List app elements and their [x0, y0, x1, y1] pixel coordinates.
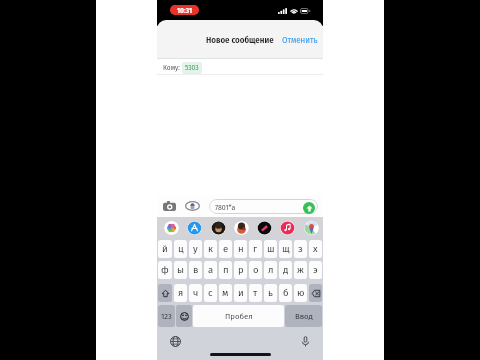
button[interactable]: с [204, 284, 217, 302]
button[interactable]: Отменить [275, 28, 323, 53]
staticText: р [238, 264, 244, 275]
staticText: щ [282, 243, 290, 254]
staticText: ы [177, 264, 184, 275]
staticText: м [222, 287, 229, 298]
staticText: Кому: [163, 64, 180, 72]
button[interactable]: App 7 [304, 221, 319, 235]
button[interactable]: ц [174, 240, 187, 258]
button[interactable]: е [219, 240, 232, 258]
staticText: д [283, 264, 289, 275]
staticText: т [253, 287, 258, 298]
staticText: е [223, 243, 229, 254]
button[interactable]: Dictate [299, 335, 312, 348]
button[interactable]: ф [158, 261, 172, 279]
staticText: н [238, 243, 244, 254]
staticText: а [208, 264, 214, 275]
staticText: б [283, 287, 289, 298]
staticText: с [208, 287, 213, 298]
button[interactable]: о [249, 261, 262, 279]
button[interactable]: ь [264, 284, 277, 302]
button[interactable]: т [249, 284, 262, 302]
staticText: ь [268, 287, 273, 298]
staticText: в [193, 264, 199, 275]
button[interactable]: 7801*a [209, 199, 318, 214]
button[interactable]: App 2 [187, 221, 202, 235]
button[interactable]: Backspace [309, 284, 322, 302]
button[interactable]: м [219, 284, 232, 302]
staticText: г [253, 243, 258, 254]
button[interactable]: ч [189, 284, 202, 302]
staticText: п [223, 264, 229, 275]
staticText: л [268, 264, 274, 275]
button[interactable]: я [174, 284, 187, 302]
button[interactable]: 5303 [182, 62, 202, 74]
button[interactable]: 123 [158, 305, 175, 327]
button[interactable]: App 1 [164, 221, 179, 235]
button[interactable]: р [234, 261, 247, 279]
button[interactable]: Пробел [193, 305, 284, 327]
staticText: Ввод [295, 312, 313, 321]
staticText: х [313, 243, 318, 254]
button[interactable]: к [204, 240, 217, 258]
button[interactable]: App 6 [280, 221, 295, 235]
button[interactable]: iMessage apps [185, 201, 200, 211]
button[interactable]: ю [294, 284, 307, 302]
button[interactable]: б [279, 284, 292, 302]
button[interactable]: х [309, 240, 322, 258]
button[interactable]: Emoji [176, 305, 192, 327]
button[interactable]: в [189, 261, 202, 279]
button[interactable]: л [264, 261, 277, 279]
button[interactable]: э [309, 261, 322, 279]
button[interactable]: а [204, 261, 217, 279]
staticText: у [193, 243, 198, 254]
button[interactable]: д [279, 261, 292, 279]
button[interactable]: ж [294, 261, 307, 279]
staticText: к [208, 243, 213, 254]
button[interactable]: Take photo [163, 201, 176, 211]
staticText: й [162, 243, 168, 254]
staticText: 7801*a [215, 203, 236, 211]
button[interactable]: Ввод [285, 305, 322, 327]
staticText: Отменить [282, 35, 318, 46]
button[interactable]: ы [174, 261, 187, 279]
staticText: ц [178, 243, 184, 254]
button[interactable]: п [219, 261, 232, 279]
button[interactable]: Change keyboard [169, 335, 182, 348]
button[interactable]: н [234, 240, 247, 258]
staticText: э [313, 264, 318, 275]
button[interactable]: и [234, 284, 247, 302]
staticText: Новое сообщение [206, 35, 274, 46]
staticText: ш [267, 243, 275, 254]
button[interactable]: App 5 [257, 221, 272, 235]
staticText: и [238, 287, 244, 298]
staticText: 10:31 [177, 6, 193, 15]
button[interactable]: App 3 [211, 221, 226, 235]
button[interactable]: Shift [158, 284, 172, 302]
staticText: я [178, 287, 184, 298]
button[interactable]: у [189, 240, 202, 258]
staticText: з [298, 243, 303, 254]
staticText: 123 [161, 312, 172, 321]
button[interactable]: App 4 [234, 221, 249, 235]
staticText: ф [161, 264, 169, 275]
button[interactable]: й [158, 240, 172, 258]
button[interactable]: Send [303, 202, 315, 214]
staticText: ж [297, 264, 304, 275]
button[interactable]: г [249, 240, 262, 258]
staticText: 5303 [185, 64, 199, 72]
button[interactable]: ш [264, 240, 277, 258]
staticText: о [253, 264, 259, 275]
staticText: Пробел [225, 312, 253, 321]
staticText: ч [193, 287, 199, 298]
button[interactable]: з [294, 240, 307, 258]
staticText: ю [297, 287, 305, 298]
button[interactable]: щ [279, 240, 292, 258]
